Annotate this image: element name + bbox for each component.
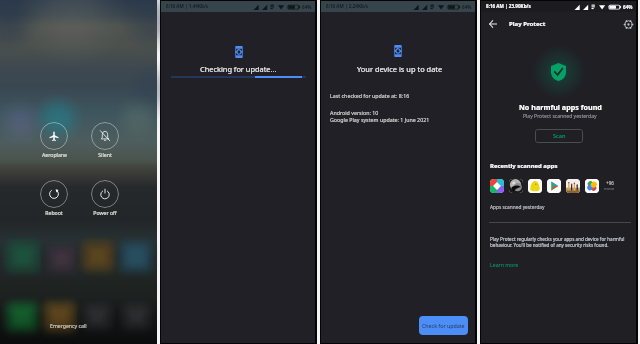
button[interactable]: Settings: [618, 14, 639, 35]
button[interactable]: Check for update: [419, 316, 468, 335]
staticText: 64%: [302, 4, 312, 10]
button[interactable]: App 0: [490, 179, 504, 193]
button[interactable]: App 3: [547, 179, 561, 193]
staticText: more: [604, 186, 615, 192]
staticText: Google Play system update: 1 June 2021: [330, 116, 430, 123]
button[interactable]: App 2: [528, 179, 542, 193]
staticText: +96: [606, 180, 614, 186]
button[interactable]: Aeroplane: [32, 122, 76, 158]
staticText: Your device is up to date: [357, 64, 443, 74]
button[interactable]: Power off: [83, 180, 127, 216]
staticText: 8:16 AM | 2.24Kb/s: [326, 3, 369, 9]
staticText: Recently scanned apps: [490, 162, 558, 170]
button[interactable]: App 1: [509, 179, 523, 193]
staticText: Android version: 10: [330, 109, 379, 116]
button[interactable]: Silent: [83, 122, 127, 158]
staticText: 64%: [623, 4, 633, 10]
button[interactable]: Emergency call: [50, 322, 87, 329]
staticText: Check for update: [422, 322, 465, 329]
staticText: Power off: [93, 209, 117, 216]
staticText: Scan: [553, 132, 566, 140]
staticText: Checking for update...: [200, 64, 277, 74]
staticText: Reboot: [45, 209, 63, 216]
button[interactable]: Learn more: [490, 261, 519, 268]
staticText: No harmful apps found: [519, 102, 602, 112]
staticText: Play Protect regularly checks your apps …: [490, 236, 625, 249]
staticText: 8:16 AM | 23.90Kb/s: [486, 3, 531, 9]
staticText: 8:16 AM | 1.44Kb/s: [166, 3, 209, 9]
button[interactable]: Back: [482, 13, 503, 34]
staticText: Apps scanned yesterday: [490, 204, 545, 211]
button[interactable]: App 5: [585, 179, 599, 193]
staticText: 64%: [462, 4, 472, 10]
button[interactable]: App 4: [566, 179, 580, 193]
staticText: Play Protect scanned yesterday: [523, 113, 597, 120]
staticText: Silent: [98, 151, 112, 158]
button[interactable]: Reboot: [32, 180, 76, 216]
staticText: Play Protect: [509, 20, 546, 28]
staticText: Last checked for update at: 8:16: [330, 92, 410, 99]
button[interactable]: Scan: [535, 129, 583, 143]
staticText: Aeroplane: [42, 151, 67, 158]
